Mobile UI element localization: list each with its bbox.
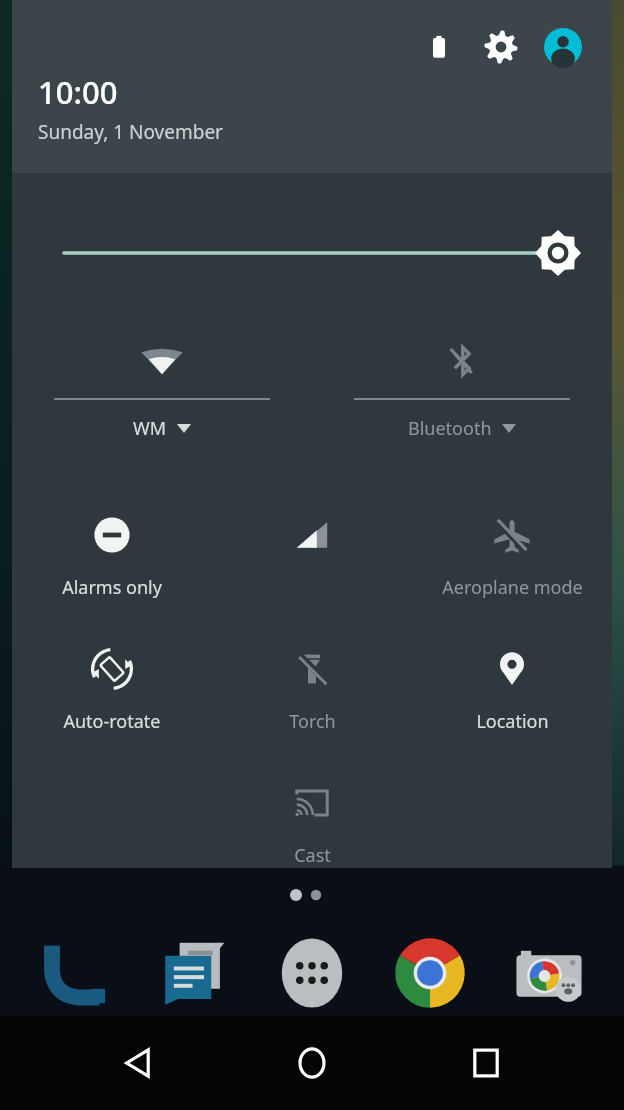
button[interactable]: Brightness [12, 223, 612, 283]
staticText: Alarms only [62, 575, 162, 600]
button[interactable]: Aeroplane mode [412, 495, 612, 607]
button[interactable]: Recents [450, 1027, 522, 1099]
button[interactable]: Camera [506, 930, 592, 1016]
button[interactable]: Bluetooth [312, 319, 612, 449]
button[interactable]: Chrome [387, 930, 473, 1016]
button[interactable]: Back [102, 1027, 174, 1099]
button[interactable]: Settings [478, 24, 524, 70]
button[interactable]: Cast [212, 763, 412, 868]
staticText: Cast [294, 843, 331, 868]
staticText: Aeroplane mode [442, 575, 583, 600]
staticText: Torch [289, 709, 336, 734]
button[interactable]: Apps [269, 930, 355, 1016]
button[interactable]: User [540, 24, 586, 70]
button[interactable]: Location [412, 629, 612, 741]
button[interactable]: Messages [151, 930, 237, 1016]
button[interactable]: Auto-rotate [12, 629, 212, 741]
staticText: Location [476, 709, 549, 734]
button[interactable]: Alarms only [12, 495, 212, 607]
staticText: Sunday, 1 November [38, 119, 223, 145]
staticText: Bluetooth [408, 416, 492, 441]
button[interactable]: WM [12, 319, 312, 449]
button[interactable]: Battery [416, 24, 462, 70]
staticText: 10:00 [38, 71, 118, 113]
staticText: WM [133, 416, 167, 441]
button[interactable]: Phone [32, 930, 118, 1016]
button[interactable]: Home [276, 1027, 348, 1099]
button[interactable]: Mobile signal [212, 495, 412, 607]
button[interactable]: Torch [212, 629, 412, 741]
staticText: Auto-rotate [63, 709, 161, 734]
